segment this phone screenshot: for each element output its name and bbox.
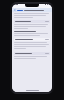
button[interactable] <box>14 13 50 18</box>
button[interactable] <box>14 38 50 41</box>
button[interactable] <box>14 20 50 23</box>
button[interactable]: Back <box>14 9 16 11</box>
button[interactable] <box>14 52 50 55</box>
button[interactable]: Back <box>12 8 52 12</box>
